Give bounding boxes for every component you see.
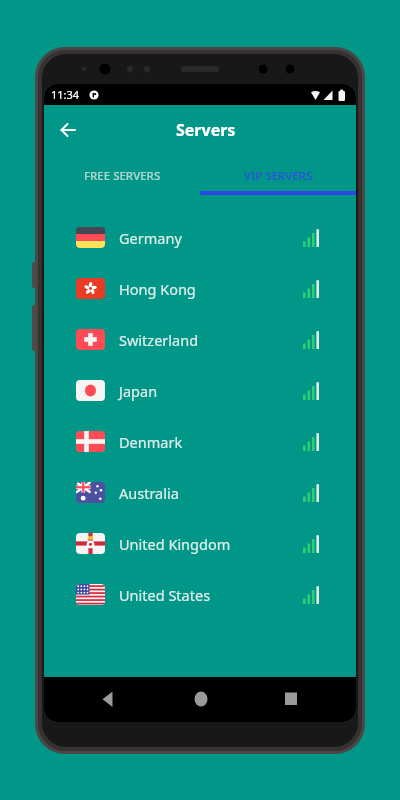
button[interactable]: Denmark	[44, 416, 356, 467]
staticText: United Kingdom	[119, 534, 231, 554]
staticText: VIP SERVERS	[244, 168, 313, 184]
staticText: Servers	[176, 119, 236, 141]
button[interactable]: Germany	[44, 212, 356, 263]
staticText: FREE SERVERS	[84, 168, 161, 184]
staticText: Germany	[119, 228, 182, 248]
staticText: Denmark	[119, 432, 183, 452]
staticText: United States	[119, 585, 211, 605]
button[interactable]: United States	[44, 569, 356, 620]
staticText: Hong Kong	[119, 279, 196, 299]
staticText: Australia	[119, 483, 179, 503]
staticText: Japan	[119, 381, 158, 401]
button[interactable]: Australia	[44, 467, 356, 518]
button[interactable]	[58, 120, 78, 140]
staticText: 11:34	[51, 87, 80, 102]
button[interactable]: Switzerland	[44, 314, 356, 365]
button[interactable]: Hong Kong	[44, 263, 356, 314]
button[interactable]: United Kingdom	[44, 518, 356, 569]
button[interactable]: FREE SERVERS	[44, 150, 200, 195]
button[interactable]	[101, 691, 117, 707]
button[interactable]	[284, 692, 298, 706]
button[interactable]: VIP SERVERS	[200, 150, 356, 195]
button[interactable]: Japan	[44, 365, 356, 416]
staticText: Switzerland	[119, 330, 199, 350]
button[interactable]	[193, 691, 209, 707]
